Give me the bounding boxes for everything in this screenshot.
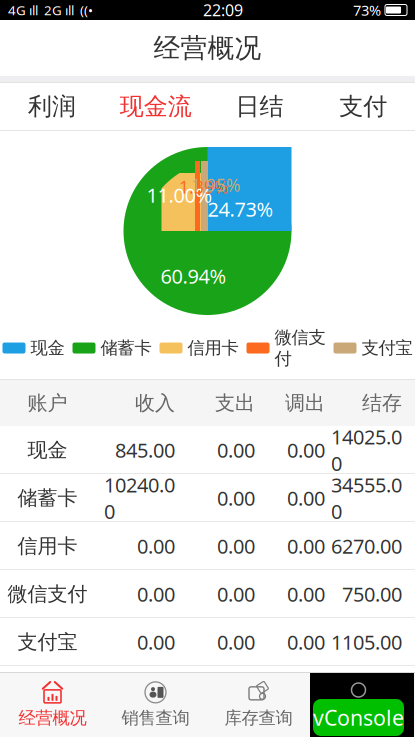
staticText: 0.00	[287, 437, 325, 463]
button[interactable]: vConsole	[313, 699, 404, 736]
staticText: 日结	[235, 92, 283, 121]
staticText: 0.00	[287, 629, 325, 655]
staticText: 0.00	[287, 485, 325, 511]
staticText: 750.00	[342, 581, 402, 607]
staticText: 支付	[339, 92, 387, 121]
button[interactable]: 库存查询	[207, 672, 310, 736]
staticText: 11.00%	[146, 182, 212, 208]
staticText: 销售查询	[121, 707, 189, 729]
staticText: 现金	[27, 438, 67, 462]
staticText: 0.00	[287, 533, 325, 559]
staticText: 账户	[27, 391, 67, 415]
staticText: 1.39%	[179, 175, 228, 198]
staticText: 0.00	[217, 437, 255, 463]
staticText: 利润	[28, 92, 76, 121]
staticText: 0.00	[217, 629, 255, 655]
staticText: 10240.00	[104, 471, 175, 524]
staticText: 现金流	[120, 92, 192, 121]
staticText: 0.00	[217, 581, 255, 607]
button[interactable]: 现金流	[104, 82, 208, 131]
button[interactable]: 日结	[207, 82, 311, 131]
staticText: 60.94%	[160, 263, 226, 289]
staticText: 1.95%	[191, 173, 240, 196]
staticText: 1105.00	[331, 629, 402, 655]
staticText: 结存	[362, 391, 402, 415]
staticText: 微信支付	[7, 582, 87, 606]
staticText: 0.00	[137, 533, 175, 559]
staticText: 14025.00	[331, 423, 402, 476]
button[interactable]: 现金	[0, 426, 415, 474]
staticText: 0.00	[287, 581, 325, 607]
button[interactable]: 支付	[311, 82, 415, 131]
staticText: 信用卡	[187, 337, 238, 359]
button[interactable]: 经营概况	[1, 672, 104, 736]
staticText: 支付宝	[17, 630, 77, 654]
staticText: 储蓄卡	[100, 337, 151, 359]
staticText: 经营概况	[153, 32, 261, 64]
button[interactable]: 储蓄卡	[0, 474, 415, 522]
staticText: 信用卡	[17, 534, 77, 558]
button[interactable]: 销售查询	[104, 672, 207, 736]
button[interactable]: 信用卡	[0, 522, 415, 570]
staticText: 支付宝	[361, 337, 412, 359]
staticText: 现金	[30, 337, 64, 359]
button[interactable]: 微信支付	[0, 570, 415, 618]
staticText: 73%	[353, 0, 381, 20]
staticText: vConsole	[313, 703, 404, 732]
staticText: 4G ıll 2G ıll ((•	[8, 1, 93, 19]
staticText: 微信支付	[274, 327, 325, 369]
staticText: 0.00	[217, 533, 255, 559]
staticText: 845.00	[115, 437, 175, 463]
staticText: 收入	[135, 391, 175, 415]
staticText: 支出	[215, 391, 255, 415]
staticText: 24.73%	[207, 196, 273, 222]
staticText: 22:09	[203, 0, 243, 21]
button[interactable]: 支付宝	[0, 618, 415, 666]
staticText: 0.00	[217, 485, 255, 511]
staticText: 储蓄卡	[17, 486, 77, 510]
staticText: 34555.00	[331, 471, 402, 524]
staticText: 经营概况	[18, 707, 86, 729]
button[interactable]: 利润	[0, 82, 104, 131]
staticText: 库存查询	[224, 707, 292, 729]
staticText: 6270.00	[331, 533, 402, 559]
staticText: 0.00	[137, 629, 175, 655]
staticText: 0.00	[137, 581, 175, 607]
staticText: 调出	[285, 391, 325, 415]
